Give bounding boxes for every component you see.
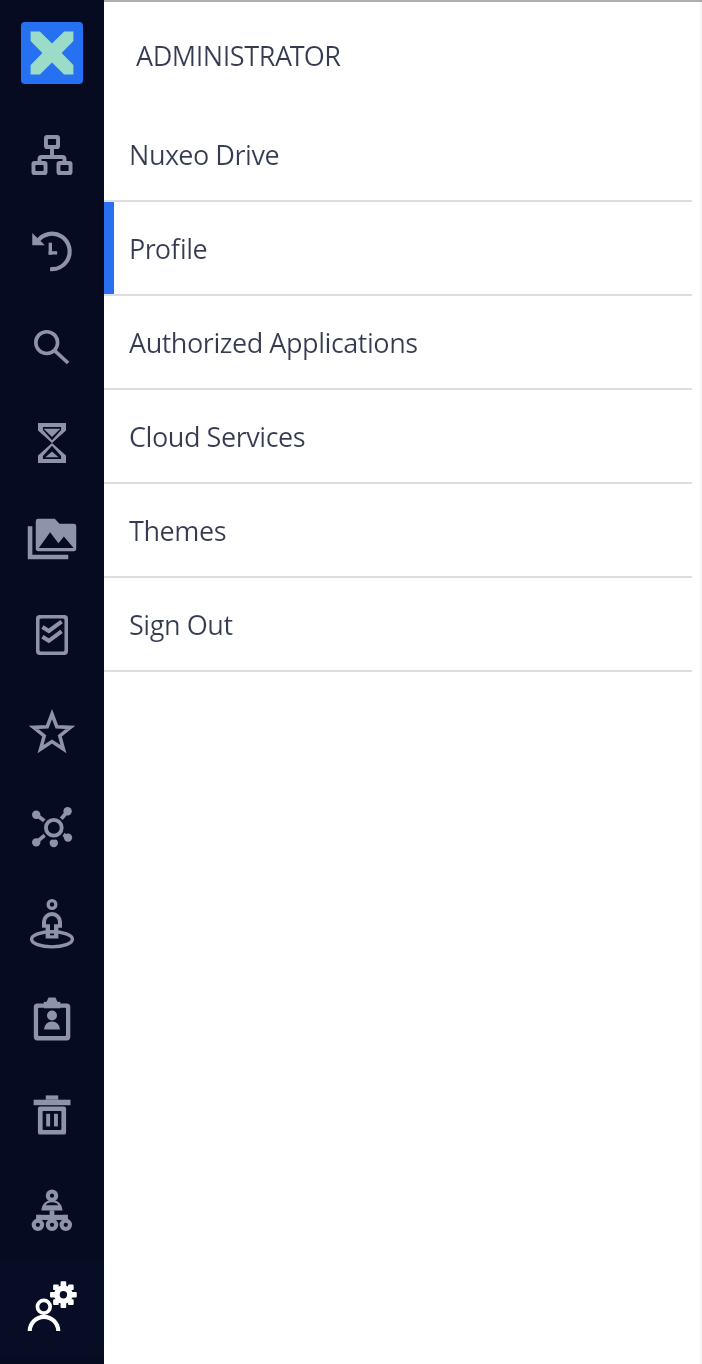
- button[interactable]: History: [0, 203, 104, 299]
- staticText: ADMINISTRATOR: [136, 37, 341, 74]
- button[interactable]: Relations: [0, 779, 104, 875]
- button[interactable]: Tasks: [0, 587, 104, 683]
- button[interactable]: Authorized Applications: [104, 296, 702, 388]
- button[interactable]: Trash: [0, 1067, 104, 1163]
- button[interactable]: Cloud Services: [104, 390, 702, 482]
- button[interactable]: Groups: [0, 1163, 104, 1259]
- button[interactable]: Person pin: [0, 875, 104, 971]
- staticText: Cloud Services: [129, 418, 306, 455]
- staticText: Themes: [129, 512, 227, 549]
- button[interactable]: Themes: [104, 484, 702, 576]
- staticText: Profile: [129, 230, 208, 267]
- staticText: Nuxeo Drive: [129, 136, 280, 173]
- button[interactable]: Nuxeo Drive: [104, 108, 702, 200]
- button[interactable]: Search: [0, 299, 104, 395]
- staticText: Sign Out: [129, 606, 233, 643]
- button[interactable]: Sign Out: [104, 578, 702, 670]
- button[interactable]: Hierarchy: [0, 107, 104, 203]
- button[interactable]: Nuxeo home: [21, 22, 83, 84]
- button[interactable]: Manage accounts: [0, 1259, 104, 1355]
- button[interactable]: Profile: [104, 202, 702, 294]
- staticText: Authorized Applications: [129, 324, 418, 361]
- button[interactable]: Collections: [0, 491, 104, 587]
- button[interactable]: Pending tasks: [0, 395, 104, 491]
- button[interactable]: Favorites: [0, 683, 104, 779]
- button[interactable]: Vocabularies: [0, 971, 104, 1067]
